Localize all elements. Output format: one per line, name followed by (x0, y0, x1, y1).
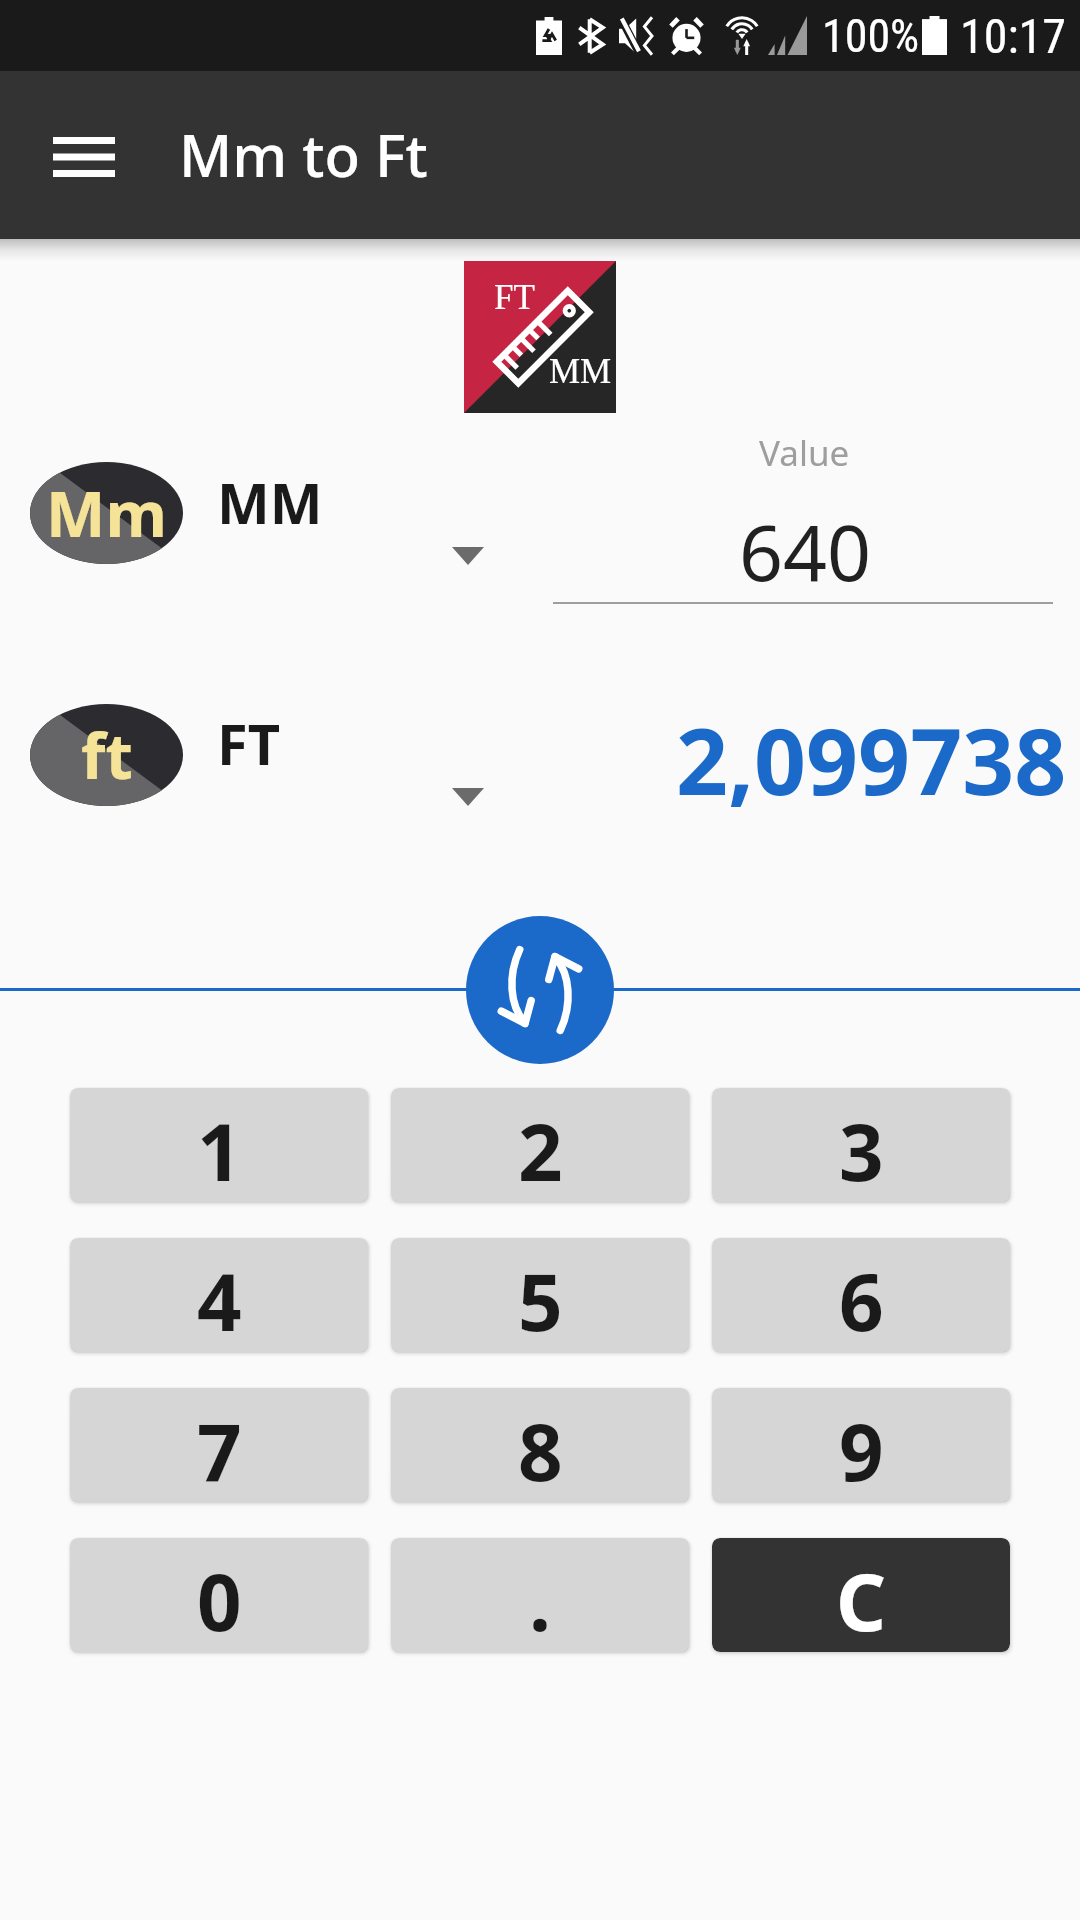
staticText: 2,099738 (676, 698, 1067, 822)
button[interactable]: 2 (391, 1088, 689, 1202)
staticText: Value (759, 429, 850, 477)
button[interactable]: Swap units (466, 916, 614, 1064)
button[interactable]: Select unit FT (452, 788, 484, 806)
staticText: 640 (739, 499, 872, 604)
staticText: MM (549, 352, 612, 391)
staticText: 100% (822, 9, 920, 63)
staticText: C (836, 1548, 887, 1652)
button[interactable]: 1 (70, 1088, 368, 1202)
staticText: . (529, 1548, 551, 1652)
button[interactable]: Select unit MM (452, 547, 484, 565)
button[interactable]: 4 (70, 1238, 368, 1352)
button[interactable]: C (712, 1538, 1010, 1652)
button[interactable]: 8 (391, 1388, 689, 1502)
staticText: Mm (46, 470, 167, 556)
staticText: 9 (839, 1398, 884, 1502)
staticText: 7 (197, 1398, 242, 1502)
button[interactable]: 6 (712, 1238, 1010, 1352)
staticText: FT (494, 278, 535, 317)
staticText: 6 (839, 1248, 884, 1352)
button[interactable]: 3 (712, 1088, 1010, 1202)
staticText: Mm to Ft (179, 115, 428, 194)
button[interactable]: . (391, 1538, 689, 1652)
staticText: 2 (518, 1098, 563, 1202)
staticText: 1 (197, 1098, 242, 1202)
staticText: FT (217, 705, 281, 781)
staticText: 8 (518, 1398, 563, 1502)
staticText: 10:17 (960, 8, 1066, 64)
staticText: MM (217, 464, 323, 540)
button[interactable]: 7 (70, 1388, 368, 1502)
button[interactable]: 9 (712, 1388, 1010, 1502)
staticText: 5 (518, 1248, 563, 1352)
staticText: 3 (839, 1098, 884, 1202)
button[interactable]: 5 (391, 1238, 689, 1352)
staticText: ft (81, 712, 133, 798)
staticText: 4 (197, 1248, 242, 1352)
staticText: 0 (197, 1548, 242, 1652)
button[interactable]: 0 (70, 1538, 368, 1652)
button[interactable]: Menu (31, 104, 136, 209)
